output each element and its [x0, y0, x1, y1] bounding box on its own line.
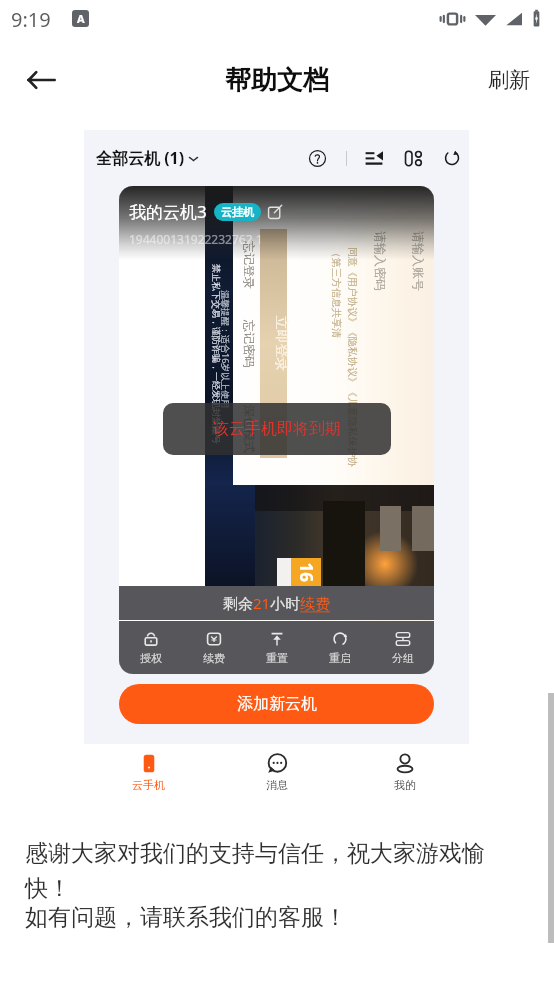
button[interactable]: 全部云机 (1)	[96, 147, 198, 169]
staticText: A	[77, 11, 85, 26]
button[interactable]: 消息	[213, 744, 341, 800]
button[interactable]: 重启	[308, 621, 371, 674]
staticText: 剩余21小时续费	[223, 593, 331, 613]
staticText: 云手机	[132, 778, 165, 792]
staticText: 立即登录	[271, 315, 289, 371]
button[interactable]: Sort	[364, 148, 384, 168]
button[interactable]: 授权	[119, 621, 182, 674]
staticText: 全部云机 (1)	[96, 147, 185, 169]
staticText: 16	[294, 562, 317, 582]
button[interactable]: Refresh	[443, 149, 461, 167]
staticText: 9:19	[11, 6, 51, 33]
staticText: 请输入账号	[411, 231, 426, 291]
staticText: 添加新云机	[237, 694, 317, 714]
staticText: 分组	[392, 651, 414, 665]
staticText: 该云手机即将到期	[213, 419, 341, 439]
button[interactable]: 我的	[341, 744, 469, 800]
staticText: 云挂机	[221, 205, 254, 219]
staticText: 我的	[394, 778, 416, 792]
staticText: 禁止私下交易，谨防诈骗，一经发现封禁账号	[211, 264, 222, 444]
staticText: 深色模式	[242, 405, 257, 453]
staticText: 如有问题，请联系我们的客服！	[25, 903, 347, 932]
button[interactable]: Back	[20, 59, 62, 101]
staticText: 感谢大家对我们的支持与信任，祝大家游戏愉快！	[25, 839, 521, 903]
staticText: 帮助文档	[225, 64, 329, 97]
staticText: 忘记登录	[242, 241, 257, 289]
button[interactable]: 云手机	[84, 744, 213, 800]
staticText: 续费	[203, 651, 225, 665]
button[interactable]: 请输入账号	[119, 186, 434, 674]
staticText: 同意《用户协议》《隐私协议》《儿童隐私保护协议》	[346, 247, 359, 479]
staticText: 消息	[266, 778, 288, 792]
staticText: 重启	[329, 651, 351, 665]
button[interactable]: Help	[308, 149, 327, 168]
button[interactable]: 续费	[182, 621, 245, 674]
button[interactable]: Layout	[404, 149, 423, 168]
button[interactable]: 重置	[245, 621, 308, 674]
button[interactable]: 添加新云机	[119, 684, 434, 724]
staticText: 请输入密码	[373, 231, 388, 291]
staticText: 温馨提醒：适合16岁以上使用	[220, 290, 232, 409]
staticText: 我的云机3	[129, 200, 207, 223]
button[interactable]: 分组	[371, 621, 434, 674]
staticText: 忘记密码	[242, 320, 257, 368]
staticText: 重置	[266, 651, 288, 665]
staticText: 授权	[140, 651, 162, 665]
staticText: 刷新	[488, 67, 530, 93]
staticText: （第三方信息共享清单）	[330, 248, 343, 356]
button[interactable]: 刷新	[478, 59, 554, 101]
staticText: 194400131922232762 1	[129, 231, 263, 247]
